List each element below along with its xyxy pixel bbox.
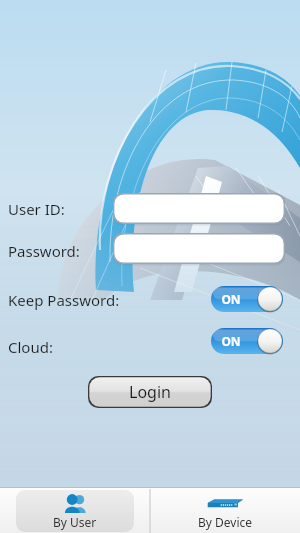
button[interactable]: Keep password on [211, 286, 283, 312]
staticText: Cloud: [8, 337, 53, 357]
button[interactable]: By Device [166, 490, 284, 532]
staticText: Login [129, 381, 171, 403]
staticText: ON [221, 291, 241, 307]
staticText: Keep Password: [8, 290, 120, 310]
button[interactable]: Login [88, 376, 212, 408]
button[interactable] [113, 233, 285, 264]
staticText: By Device [198, 514, 253, 530]
button[interactable]: By User [16, 490, 134, 532]
staticText: User ID: [8, 199, 65, 219]
staticText: By User [53, 514, 97, 530]
button[interactable] [113, 193, 285, 224]
staticText: Password: [8, 241, 80, 261]
staticText: ON [221, 333, 241, 349]
button[interactable]: Cloud on [211, 328, 283, 354]
